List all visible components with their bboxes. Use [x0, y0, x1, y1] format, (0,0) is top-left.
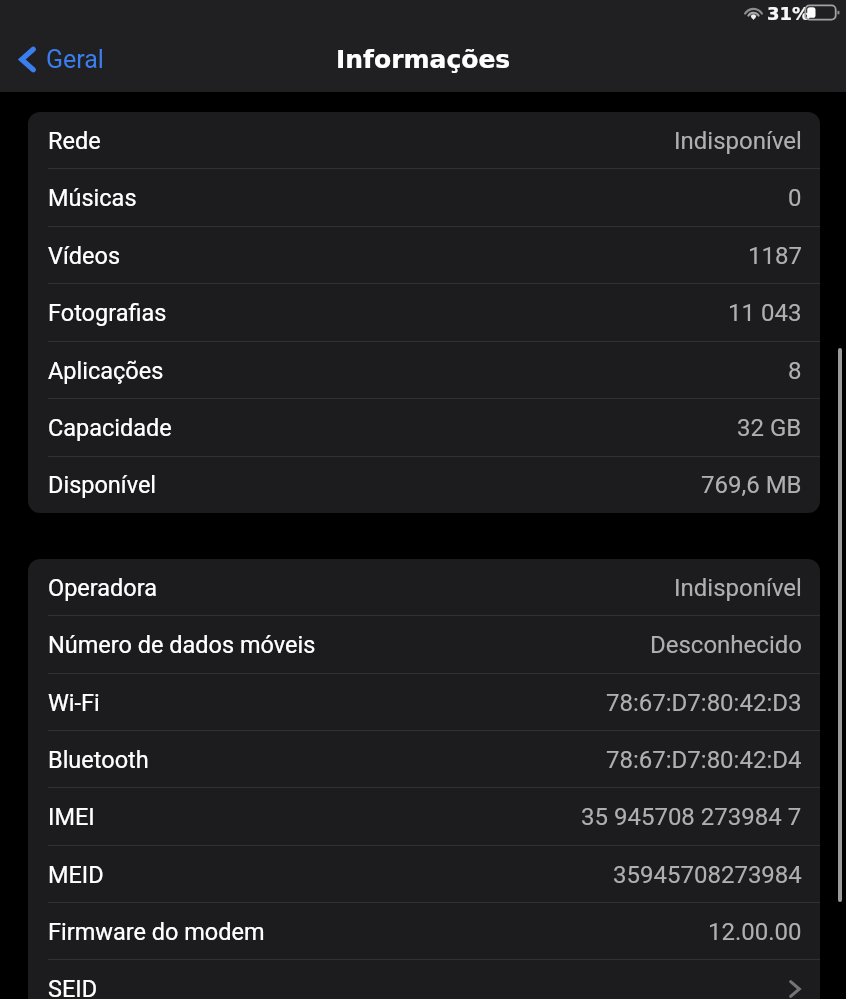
staticText: Bluetooth — [48, 746, 149, 774]
staticText: 0 — [788, 184, 802, 212]
staticText: 1187 — [748, 242, 802, 270]
staticText: 32 GB — [737, 414, 802, 442]
staticText: Rede — [48, 127, 101, 155]
staticText: Fotografias — [48, 299, 167, 327]
button[interactable]: Fotografias — [28, 284, 820, 342]
button[interactable]: Wi-Fi — [28, 674, 820, 731]
staticText: Número de dados móveis — [48, 631, 316, 659]
staticText: IMEI — [48, 803, 95, 831]
button[interactable]: Aplicações — [28, 342, 820, 399]
staticText: Indisponível — [674, 127, 802, 155]
button[interactable]: SEID — [28, 960, 820, 999]
button[interactable]: Número de dados móveis — [28, 616, 820, 674]
button[interactable]: Firmware do modem — [28, 903, 820, 960]
staticText: 11 043 — [728, 299, 802, 327]
staticText: Indisponível — [674, 574, 802, 602]
staticText: Aplicações — [48, 357, 164, 385]
other: Open SEID details — [788, 979, 802, 999]
staticText: Desconhecido — [650, 631, 802, 659]
staticText: 769,6 MB — [701, 471, 802, 499]
staticText: 35945708273984 — [613, 861, 802, 889]
button[interactable]: Operadora — [28, 559, 820, 616]
button[interactable]: Músicas — [28, 169, 820, 227]
staticText: 78:67:D7:80:42:D3 — [606, 689, 802, 717]
staticText: Geral — [46, 45, 104, 74]
staticText: 12.00.00 — [708, 918, 802, 946]
staticText: 35 945708 273984 7 — [581, 803, 802, 831]
button[interactable]: Rede — [28, 112, 820, 169]
button[interactable]: Capacidade — [28, 399, 820, 457]
staticText: Músicas — [48, 184, 137, 212]
staticText: 78:67:D7:80:42:D4 — [606, 746, 802, 774]
button[interactable]: Geral — [0, 37, 118, 82]
staticText: Wi-Fi — [48, 689, 100, 717]
staticText: Informações — [336, 45, 511, 74]
button[interactable]: Vídeos — [28, 227, 820, 284]
button[interactable]: MEID — [28, 846, 820, 903]
staticText: 8 — [788, 357, 802, 385]
staticText: Vídeos — [48, 242, 121, 270]
staticText: MEID — [48, 861, 104, 889]
staticText: 31% — [767, 3, 811, 24]
button[interactable]: Bluetooth — [28, 731, 820, 788]
button[interactable]: IMEI — [28, 788, 820, 846]
staticText: Disponível — [48, 471, 157, 499]
staticText: SEID — [48, 975, 98, 999]
staticText: Capacidade — [48, 414, 172, 442]
staticText: Firmware do modem — [48, 918, 265, 946]
button[interactable]: Disponível — [28, 457, 820, 513]
staticText: Operadora — [48, 574, 158, 602]
